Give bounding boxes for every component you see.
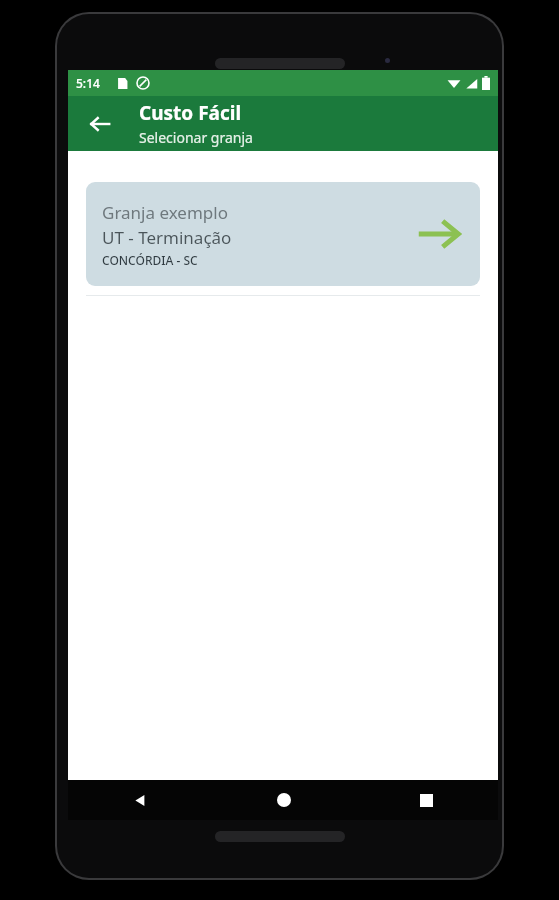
staticText: Granja exemplo: [102, 201, 228, 224]
staticText: UT - Terminação: [102, 226, 232, 249]
staticText: CONCÓRDIA - SC: [102, 252, 198, 268]
staticText: Custo Fácil: [139, 100, 242, 126]
button[interactable]: Recent apps: [355, 780, 498, 820]
staticText: Selecionar granja: [139, 128, 253, 147]
button[interactable]: Home: [212, 780, 355, 820]
button[interactable]: Back: [78, 102, 122, 146]
staticText: 5:14: [76, 75, 100, 91]
button[interactable]: Back: [68, 780, 212, 820]
button[interactable]: Granja exemplo: [86, 182, 480, 286]
